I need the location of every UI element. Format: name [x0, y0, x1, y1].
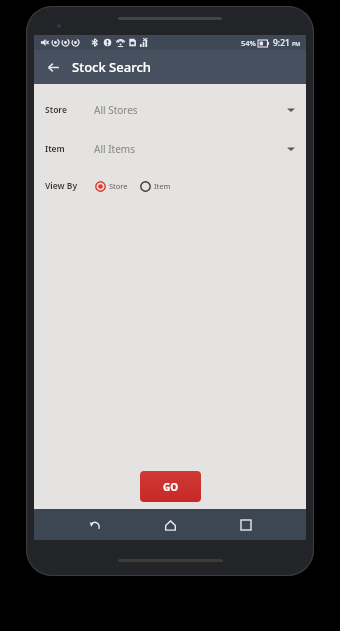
staticText: Item — [154, 181, 171, 191]
button[interactable]: Store — [94, 175, 129, 197]
staticText: Store — [109, 181, 128, 191]
staticText: 9:21 — [273, 37, 290, 49]
staticText: All Items — [94, 142, 287, 156]
staticText: 54% — [241, 38, 256, 48]
button[interactable]: Store — [34, 97, 306, 123]
staticText: PM — [292, 40, 301, 47]
button[interactable]: Recent apps — [231, 510, 261, 540]
button[interactable]: Item — [34, 136, 306, 162]
button[interactable]: Back — [40, 54, 66, 80]
button[interactable]: Home — [155, 510, 185, 540]
staticText: Store — [45, 104, 86, 116]
staticText: GO — [163, 480, 179, 494]
button[interactable]: GO — [140, 471, 201, 502]
staticText: Item — [45, 143, 86, 155]
staticText: View By — [45, 180, 86, 192]
staticText: Stock Search — [72, 58, 151, 76]
staticText: All Stores — [94, 103, 287, 117]
button[interactable]: Back — [80, 510, 110, 540]
button[interactable]: Item — [139, 175, 172, 197]
